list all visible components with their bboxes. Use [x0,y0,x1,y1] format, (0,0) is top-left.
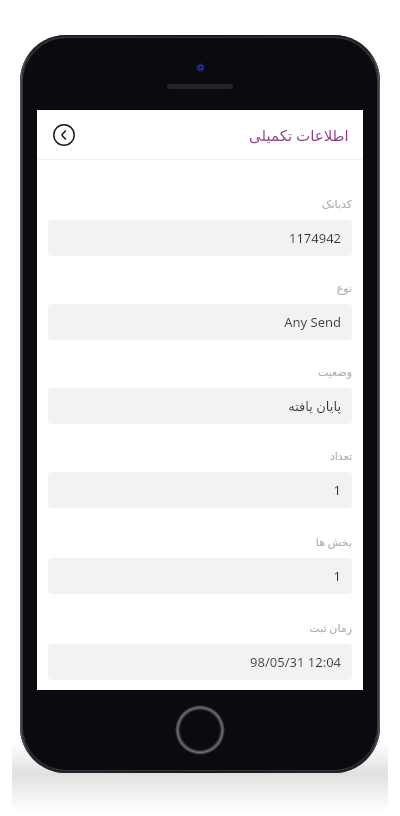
staticText: اطلاعات تکمیلی [249,125,349,145]
staticText: بخش ها [48,534,352,549]
button[interactable]: 1174942 [48,220,352,256]
staticText: Any Send [284,313,341,331]
staticText: تعداد [48,450,352,463]
staticText: 98/05/31 12:04 [250,653,341,671]
button[interactable]: پایان یافته [48,388,352,424]
staticText: 1 [333,567,341,585]
staticText: 1174942 [288,229,341,247]
button[interactable]: Any Send [48,304,352,340]
staticText: وضعیت [48,366,352,379]
staticText: 1 [333,481,341,499]
button[interactable]: 1 [48,558,352,594]
staticText: پایان یافته [288,397,341,415]
staticText: زمان ثبت [48,620,352,635]
staticText: نوع [48,282,352,295]
button[interactable]: 1 [48,472,352,508]
button[interactable]: 98/05/31 12:04 [48,644,352,680]
staticText: کدبانک [48,198,352,211]
button[interactable]: Back [51,122,77,148]
